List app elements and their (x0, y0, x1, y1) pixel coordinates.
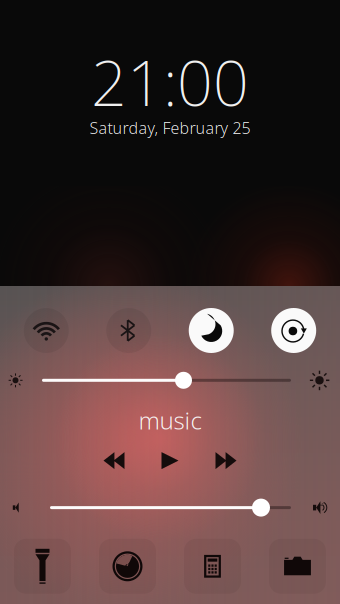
staticText: 21:00 (91, 40, 249, 123)
button[interactable]: Calculator (184, 539, 241, 594)
button[interactable]: Previous (91, 448, 137, 474)
staticText: music (138, 404, 201, 436)
staticText: Saturday, February 25 (89, 117, 250, 138)
button[interactable]: Play (150, 448, 190, 474)
button[interactable]: Camera (269, 539, 326, 594)
button[interactable]: Wi-Fi (24, 308, 69, 353)
button[interactable]: Bluetooth (106, 308, 151, 353)
button[interactable]: Do Not Disturb (189, 308, 234, 353)
button[interactable]: Timer (99, 539, 156, 594)
button[interactable]: Next (203, 448, 249, 474)
button[interactable]: Rotation Lock (271, 308, 316, 353)
button[interactable]: Flashlight (14, 539, 71, 594)
